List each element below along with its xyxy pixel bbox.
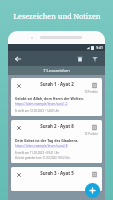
button[interactable]: https://islam.example/lesen/sura2-8 [15, 144, 68, 148]
staticText: https://islam.example/lesen/sura1-2 [15, 102, 68, 106]
staticText: 10 Punkte [84, 90, 98, 94]
staticText: https://islam.example/lesen/sura2-8 [15, 144, 68, 148]
staticText: 7 Lesezeichen [43, 68, 70, 73]
button[interactable]: Notiz bearbeiten [90, 123, 98, 131]
staticText: 9:41 [96, 45, 103, 50]
staticText: Surah 1 · Ayat 2 [40, 81, 74, 87]
button[interactable]: Lesezeichen entfernen [15, 124, 22, 131]
button[interactable]: Sortieren [89, 53, 101, 65]
staticText: Surah 2 · Ayat 8 [40, 123, 74, 129]
button[interactable]: Löschen [74, 53, 86, 65]
staticText: Erstellt am 12.03.2023 • 14:05 Uhr [15, 109, 60, 113]
button[interactable]: Zurück [12, 53, 23, 64]
staticText: Lesezeichen und Notizen [13, 11, 101, 21]
button[interactable]: Notiz bearbeiten [90, 81, 98, 89]
button[interactable]: Lesezeichen entfernen [11, 167, 102, 191]
staticText: 12 Punkte [84, 132, 98, 136]
staticText: Zuletzt geändert am 11.03.2023 10:02 Uhr [15, 156, 71, 160]
button[interactable]: Lesezeichen entfernen [11, 78, 102, 116]
button[interactable]: Lesezeichen entfernen [15, 171, 22, 178]
button[interactable]: https://islam.example/lesen/sura1-2 [15, 102, 68, 106]
staticText: Erstellt am 11.03.2023 • 09:21 Uhr [15, 151, 60, 155]
staticText: Surah 3 · Ayat 5 [40, 170, 74, 176]
button[interactable]: Notiz bearbeiten [90, 170, 98, 178]
button[interactable]: Lesezeichen entfernen [15, 82, 22, 89]
button[interactable]: Lesezeichen entfernen [11, 120, 102, 163]
button[interactable]: Neues Lesezeichen hinzufügen [85, 183, 100, 198]
staticText: Gelobt sei Allah, dem Herrn der Welten. [15, 96, 84, 101]
staticText: Dein Gebet ist der Tag des Glaubens. [15, 138, 79, 143]
